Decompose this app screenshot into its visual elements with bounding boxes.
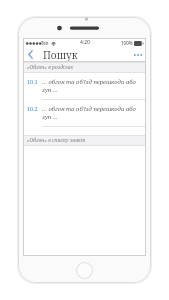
staticText: 100% [121, 40, 133, 46]
staticText: Тел [41, 40, 49, 46]
staticText: Пошук [43, 48, 78, 62]
staticText: … обгон та об'їзд перешкоди або зуп … [42, 78, 142, 94]
staticText: 10.1 [27, 78, 40, 85]
staticText: … обгон та об'їзд перешкоди або зуп … [42, 105, 142, 121]
button[interactable]: 10.1 [23, 73, 146, 99]
staticText: 4:20 [80, 39, 90, 46]
button[interactable]: Home [76, 262, 93, 279]
button[interactable]: Back [23, 47, 37, 62]
button[interactable]: More options [130, 47, 146, 62]
staticText: «Обгон» в списку знаків [27, 137, 86, 144]
staticText: 10.2 [27, 105, 40, 112]
staticText: «Обгон» в розділах [27, 64, 74, 71]
button[interactable]: 10.2 [23, 100, 146, 126]
